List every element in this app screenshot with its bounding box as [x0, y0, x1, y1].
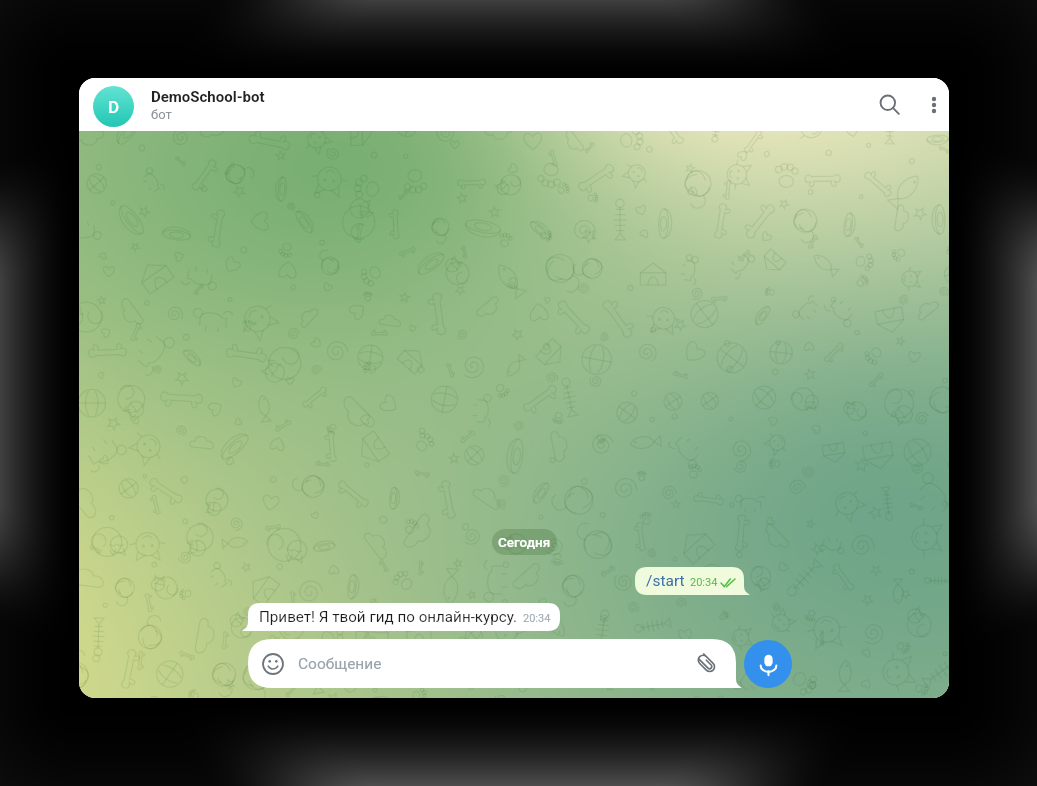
staticText: Сегодня: [498, 534, 551, 550]
staticText: D: [108, 97, 120, 117]
staticText: Привет! Я твой гид по онлайн-курсу.: [259, 608, 518, 626]
button[interactable]: Привет! Я твой гид по онлайн-курсу.: [242, 603, 560, 631]
staticText: /start: [646, 572, 685, 590]
staticText: 20:34: [690, 576, 718, 589]
button[interactable]: Record voice message: [744, 640, 792, 688]
button[interactable]: More options: [919, 90, 949, 120]
staticText: Сообщение: [298, 655, 382, 673]
button[interactable]: /start: [635, 567, 750, 595]
button[interactable]: DemoSchool-bot: [151, 88, 869, 122]
button[interactable]: Сообщение: [248, 639, 742, 688]
button[interactable]: Search: [869, 84, 911, 126]
staticText: бот: [151, 107, 172, 122]
button[interactable]: D: [93, 86, 134, 127]
button[interactable]: Attach file: [694, 651, 720, 677]
staticText: 20:34: [523, 612, 551, 625]
button[interactable]: Сегодня: [492, 529, 557, 555]
staticText: DemoSchool-bot: [151, 88, 265, 106]
